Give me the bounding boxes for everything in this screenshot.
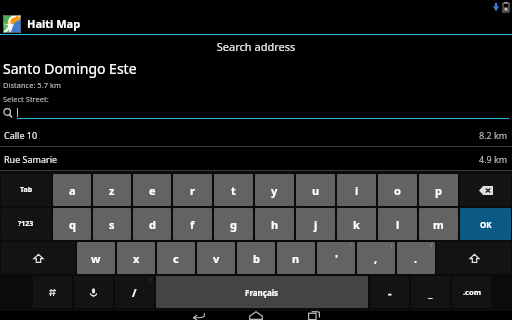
staticText: u — [312, 183, 320, 198]
button[interactable]: Shift — [1, 242, 75, 274]
button[interactable]: k — [337, 208, 376, 240]
staticText: ?123 — [18, 219, 34, 229]
staticText: ? — [430, 243, 433, 250]
staticText: q — [69, 217, 76, 232]
staticText: d — [149, 217, 156, 232]
button[interactable]: Français — [156, 276, 368, 308]
staticText: . — [414, 251, 418, 266]
button[interactable]: Voice input — [74, 276, 113, 308]
button[interactable]: a — [53, 174, 91, 206]
staticText: Search address — [0, 39, 512, 54]
staticText: Tab — [20, 185, 33, 195]
staticText: c — [173, 251, 179, 266]
staticText: OK — [480, 219, 492, 230]
button[interactable]: p — [419, 174, 458, 206]
staticText: Rue Samarie — [4, 153, 58, 165]
staticText: l — [396, 217, 400, 232]
button[interactable]: ?123 — [1, 208, 51, 240]
button[interactable]: v — [197, 242, 235, 274]
button[interactable]: Calle 10 — [0, 123, 512, 146]
staticText: o — [394, 183, 401, 198]
staticText: j — [314, 217, 318, 232]
button[interactable]: OK — [460, 208, 511, 240]
button[interactable]: i — [337, 174, 376, 206]
button[interactable]: x — [117, 242, 155, 274]
staticText: Français — [245, 287, 279, 298]
button[interactable]: ' — [317, 242, 355, 274]
staticText: m — [433, 217, 444, 232]
button[interactable]: Home — [238, 311, 274, 320]
button[interactable]: .com — [452, 276, 491, 308]
staticText: b — [253, 251, 260, 266]
staticText: a — [69, 183, 76, 198]
button[interactable]: s — [93, 208, 131, 240]
staticText: k — [353, 217, 360, 232]
button[interactable]: n — [277, 242, 315, 274]
button[interactable]: b — [237, 242, 275, 274]
button[interactable]: u — [296, 174, 335, 206]
button[interactable]: o — [378, 174, 417, 206]
button[interactable]: . — [397, 242, 435, 274]
staticText: e — [149, 183, 156, 198]
button[interactable]: d — [133, 208, 171, 240]
button[interactable]: l — [378, 208, 417, 240]
button[interactable]: j — [296, 208, 335, 240]
staticText: _ — [428, 285, 433, 300]
staticText: i — [355, 183, 359, 198]
staticText: " — [350, 243, 353, 250]
button[interactable]: t — [214, 174, 253, 206]
staticText: z — [109, 183, 115, 198]
button[interactable]: Tab — [1, 174, 51, 206]
staticText: t — [231, 183, 236, 198]
button[interactable] — [0, 106, 512, 120]
button[interactable]: r — [173, 174, 212, 206]
staticText: / — [132, 285, 137, 300]
button[interactable]: Backspace — [460, 174, 511, 206]
staticText: r — [190, 183, 195, 198]
button[interactable]: m — [419, 208, 458, 240]
staticText: Calle 10 — [4, 129, 38, 141]
staticText: Santo Domingo Este — [3, 59, 137, 78]
staticText: h — [271, 217, 279, 232]
staticText: g — [230, 217, 237, 232]
button[interactable]: q — [53, 208, 91, 240]
staticText: p — [435, 183, 442, 198]
button[interactable]: _ — [411, 276, 450, 308]
staticText: w — [91, 251, 101, 266]
button[interactable]: z — [93, 174, 131, 206]
button[interactable]: e — [133, 174, 171, 206]
staticText: - — [388, 285, 392, 300]
staticText: 4.9 km — [479, 153, 508, 165]
staticText: Haiti Map — [27, 16, 81, 31]
button[interactable]: Back — [180, 311, 216, 320]
staticText: y — [271, 183, 278, 198]
staticText: s — [109, 217, 115, 232]
staticText: Distance: 5.7 km — [3, 80, 61, 90]
staticText: n — [292, 251, 300, 266]
button[interactable]: Recents — [296, 311, 332, 320]
staticText: : — [150, 277, 152, 284]
staticText: 8.2 km — [479, 129, 508, 141]
staticText: ' — [335, 251, 338, 266]
button[interactable]: w — [77, 242, 115, 274]
staticText: ! — [391, 243, 393, 250]
staticText: .com — [463, 287, 481, 297]
button[interactable]: f — [173, 208, 212, 240]
staticText: x — [133, 251, 140, 266]
staticText: v — [213, 251, 220, 266]
button[interactable]: / — [115, 276, 154, 308]
staticText: Select Street: — [3, 94, 49, 104]
button[interactable]: y — [255, 174, 294, 206]
button[interactable]: , — [357, 242, 395, 274]
button[interactable]: Shift — [437, 242, 511, 274]
button[interactable]: h — [255, 208, 294, 240]
button[interactable]: - — [370, 276, 409, 308]
button[interactable]: Rue Samarie — [0, 147, 512, 170]
staticText: f — [190, 217, 195, 232]
button[interactable]: g — [214, 208, 253, 240]
staticText: , — [374, 251, 378, 266]
button[interactable]: c — [157, 242, 195, 274]
button[interactable]: Switch keyboard — [33, 276, 72, 308]
